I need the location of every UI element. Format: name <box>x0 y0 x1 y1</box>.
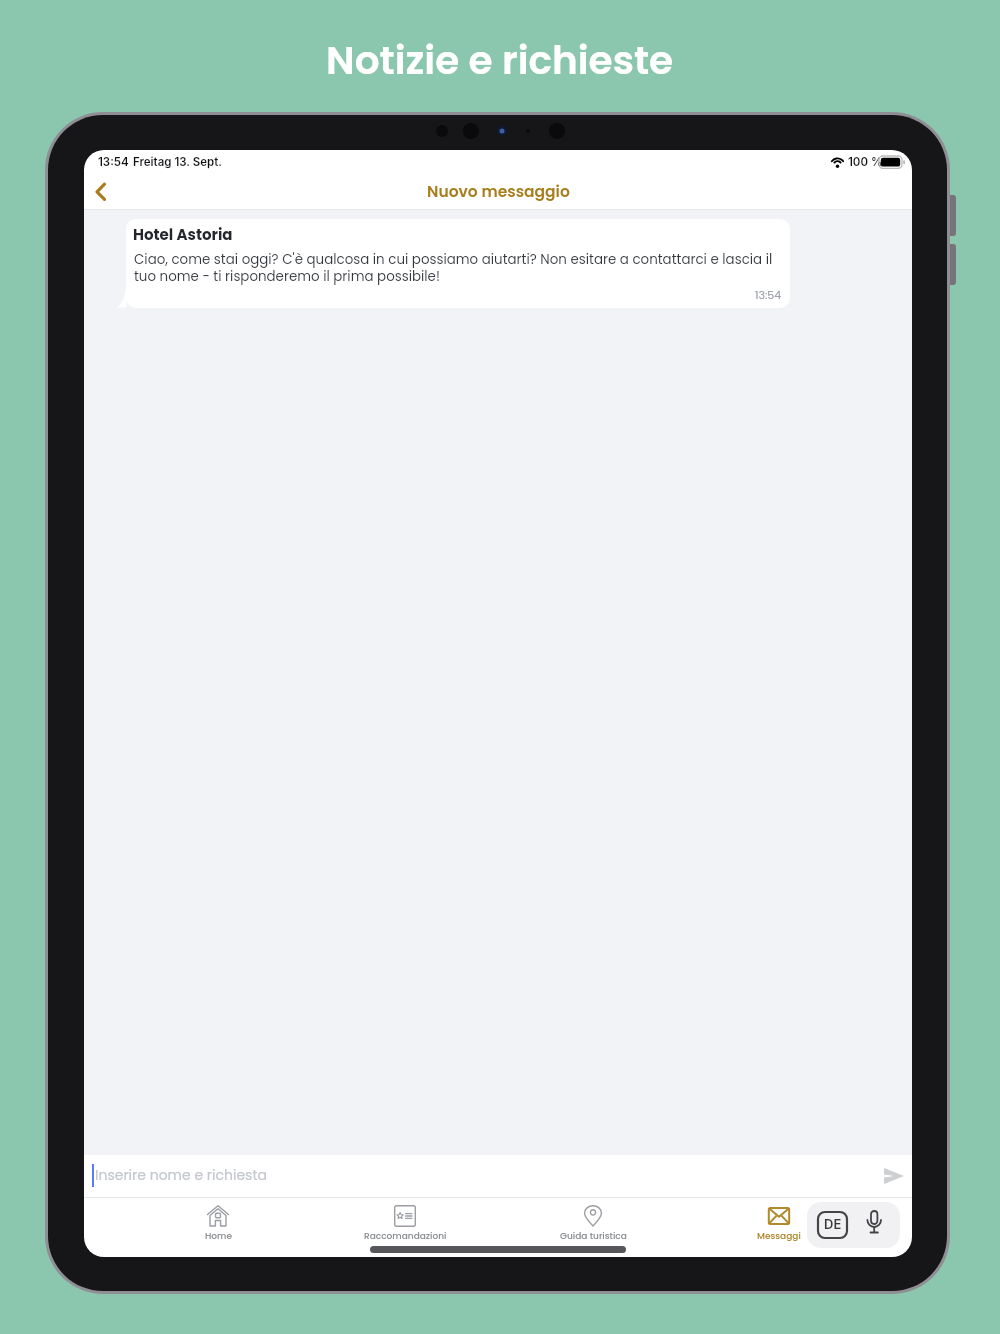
staticText: Inserire nome e richiesta <box>95 1165 267 1185</box>
staticText: Hotel Astoria <box>133 224 233 245</box>
staticText: Notizie e richieste <box>326 33 674 88</box>
button[interactable]: Home <box>148 1205 288 1245</box>
button[interactable]: Guida turistica <box>523 1205 663 1245</box>
staticText: 100 % <box>848 155 883 169</box>
staticText: Messaggi <box>757 1230 801 1243</box>
staticText: Nuovo messaggio <box>427 181 570 203</box>
button[interactable]: Raccomandazioni <box>335 1205 475 1245</box>
staticText: tuo nome - ti risponderemo il prima poss… <box>134 267 440 286</box>
button[interactable]: Inserire nome e richiesta <box>84 1155 912 1197</box>
staticText: Ciao, come stai oggi? C'è qualcosa in cu… <box>134 250 773 269</box>
button[interactable]: Messaggi <box>709 1205 849 1245</box>
staticText: 13:54 <box>98 155 129 169</box>
button[interactable]: Hotel Astoria <box>126 219 790 308</box>
staticText: Raccomandazioni <box>364 1230 447 1243</box>
staticText: DE <box>824 1216 842 1232</box>
staticText: 13:54 <box>755 287 782 302</box>
staticText: Guida turistica <box>560 1230 627 1243</box>
button[interactable] <box>95 183 107 201</box>
button[interactable]: DE <box>807 1202 900 1248</box>
staticText: Freitag 13. Sept. <box>133 155 222 169</box>
staticText: Home <box>205 1230 232 1243</box>
